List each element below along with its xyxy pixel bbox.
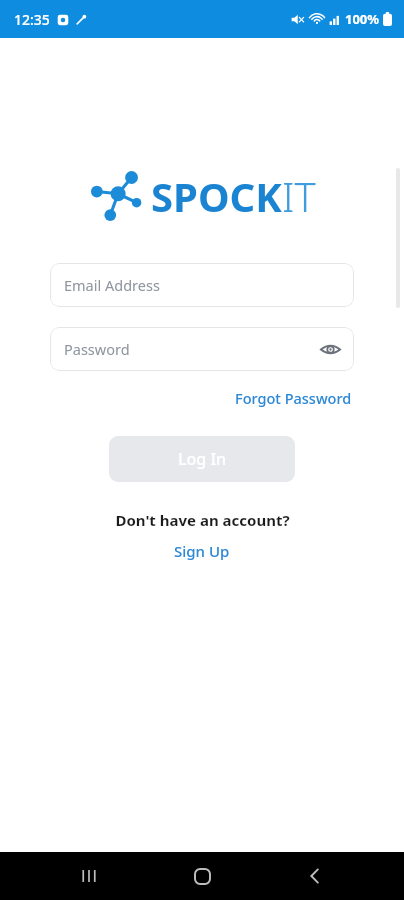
staticText: Forgot Password (235, 388, 352, 408)
button[interactable]: Email Address (50, 263, 354, 307)
staticText: 100% (345, 10, 380, 28)
button[interactable]: Back (291, 852, 339, 900)
button[interactable]: Show password (317, 336, 343, 362)
button[interactable]: Recent apps (65, 852, 113, 900)
button[interactable]: Forgot Password (233, 385, 354, 411)
staticText: 12:35 (14, 10, 50, 29)
staticText: Password (64, 339, 130, 359)
button[interactable]: Home (178, 852, 226, 900)
button[interactable]: Password (50, 327, 354, 371)
staticText: Email Address (64, 275, 160, 295)
staticText: Don't have an account? (115, 510, 290, 530)
staticText: SPOCK (151, 169, 282, 223)
staticText: IT (282, 169, 316, 223)
button[interactable]: Log In (109, 436, 295, 482)
button[interactable]: Sign Up (168, 538, 236, 564)
staticText: Log In (178, 448, 227, 470)
staticText: Sign Up (174, 541, 230, 561)
